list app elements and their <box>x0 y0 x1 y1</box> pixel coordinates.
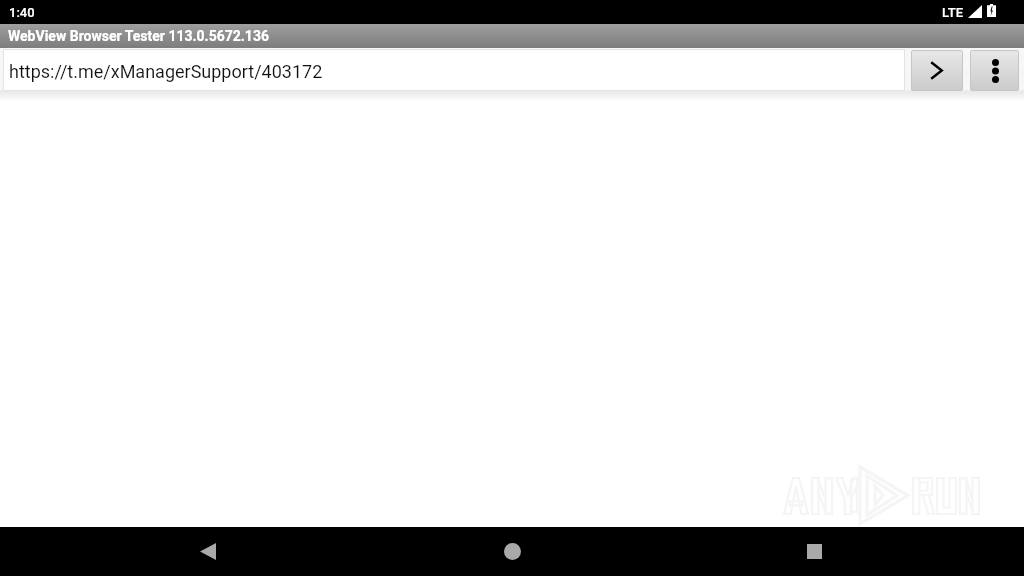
button[interactable]: https://t.me/xManagerSupport/403172 <box>3 49 905 91</box>
button[interactable]: Back <box>160 527 256 576</box>
button[interactable]: More options <box>970 50 1019 91</box>
button[interactable]: Go <box>911 50 963 91</box>
button[interactable]: Recent apps <box>766 527 862 576</box>
staticText: WebView Browser Tester 113.0.5672.136 <box>8 28 269 44</box>
staticText: https://t.me/xManagerSupport/403172 <box>9 61 323 82</box>
staticText: 1:40 <box>9 5 35 20</box>
staticText: LTE <box>942 5 963 20</box>
button[interactable]: Home <box>464 527 560 576</box>
